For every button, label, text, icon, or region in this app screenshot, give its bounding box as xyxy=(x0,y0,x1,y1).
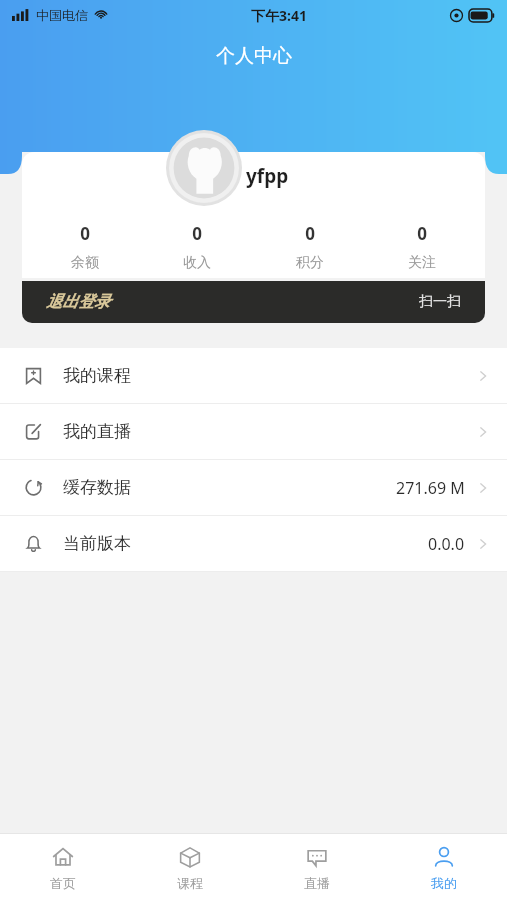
button[interactable]: 缓存数据 xyxy=(0,460,507,515)
button[interactable]: 直播 xyxy=(253,844,380,891)
button[interactable]: 首页 xyxy=(0,844,126,891)
staticText: 中国电信 xyxy=(36,7,88,23)
staticText: 关注 xyxy=(408,254,436,272)
staticText: 我的课程 xyxy=(63,365,131,386)
staticText: 课程 xyxy=(177,875,203,891)
button[interactable]: 我的课程 xyxy=(0,348,507,403)
staticText: 直播 xyxy=(304,875,330,891)
button[interactable]: 当前版本 xyxy=(0,516,507,571)
staticText: 0.0.0 xyxy=(428,533,465,555)
staticText: 下午3:41 xyxy=(251,6,307,25)
staticText: 个人中心 xyxy=(216,44,292,68)
staticText: 0 xyxy=(417,222,427,245)
button[interactable]: 我的 xyxy=(380,844,507,891)
staticText: 0 xyxy=(192,222,202,245)
staticText: 首页 xyxy=(50,875,76,891)
button[interactable]: 0 xyxy=(372,222,472,272)
staticText: 0 xyxy=(80,222,90,245)
staticText: 我的直播 xyxy=(63,421,131,442)
staticText: 收入 xyxy=(183,254,211,272)
button[interactable]: 我的直播 xyxy=(0,404,507,459)
button[interactable]: 0 xyxy=(35,222,135,272)
button[interactable]: 0 xyxy=(147,222,247,272)
staticText: 积分 xyxy=(296,254,324,272)
staticText: 余额 xyxy=(71,254,99,272)
button[interactable]: 退出登录 xyxy=(22,281,485,323)
staticText: 退出登录 xyxy=(46,292,110,312)
staticText: 扫一扫 xyxy=(419,293,461,311)
button[interactable]: 课程 xyxy=(126,844,253,891)
staticText: 我的 xyxy=(431,875,457,891)
staticText: 0 xyxy=(305,222,315,245)
staticText: 当前版本 xyxy=(63,533,131,554)
staticText: 271.69 M xyxy=(396,477,465,499)
staticText: 缓存数据 xyxy=(63,477,131,498)
button[interactable]: 0 xyxy=(260,222,360,272)
staticText: yfpp xyxy=(246,163,289,189)
